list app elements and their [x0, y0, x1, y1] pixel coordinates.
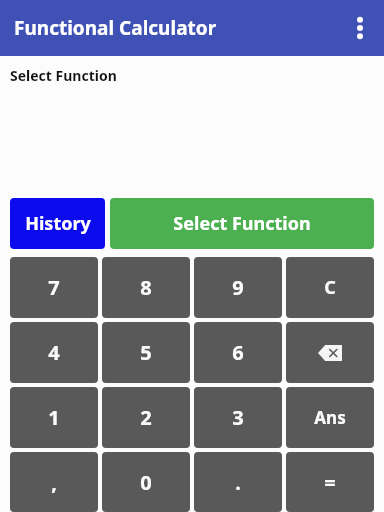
button[interactable]: 5	[102, 322, 190, 383]
staticText: 8	[140, 274, 152, 301]
staticText: .	[235, 469, 241, 496]
staticText: 7	[48, 274, 60, 301]
staticText: Select Function	[173, 211, 311, 236]
button[interactable]: =	[286, 452, 374, 512]
staticText: 0	[140, 469, 152, 496]
staticText: C	[324, 275, 336, 300]
button[interactable]: Select Function	[110, 198, 374, 249]
button[interactable]: .	[194, 452, 282, 512]
button[interactable]: More options	[336, 0, 384, 56]
staticText: ,	[51, 469, 57, 496]
staticText: 1	[48, 404, 60, 431]
staticText: Select Function	[10, 66, 117, 85]
staticText: 9	[232, 274, 244, 301]
button[interactable]: 6	[194, 322, 282, 383]
button[interactable]: 7	[10, 257, 98, 318]
button[interactable]: Ans	[286, 387, 374, 448]
button[interactable]: 4	[10, 322, 98, 383]
button[interactable]: 1	[10, 387, 98, 448]
staticText: 6	[232, 339, 244, 366]
button[interactable]: 0	[102, 452, 190, 512]
button[interactable]: History	[10, 198, 105, 249]
staticText: 2	[140, 404, 152, 431]
button[interactable]: 8	[102, 257, 190, 318]
staticText: History	[25, 211, 91, 236]
button[interactable]: Backspace	[286, 322, 374, 383]
button[interactable]: C	[286, 257, 374, 318]
button[interactable]: ,	[10, 452, 98, 512]
staticText: 5	[140, 339, 152, 366]
staticText: Ans	[314, 406, 346, 429]
button[interactable]: 2	[102, 387, 190, 448]
button[interactable]: 3	[194, 387, 282, 448]
button[interactable]: 9	[194, 257, 282, 318]
staticText: 3	[232, 404, 244, 431]
staticText: =	[324, 469, 336, 496]
staticText: 4	[48, 339, 60, 366]
staticText: Functional Calculator	[14, 15, 217, 41]
